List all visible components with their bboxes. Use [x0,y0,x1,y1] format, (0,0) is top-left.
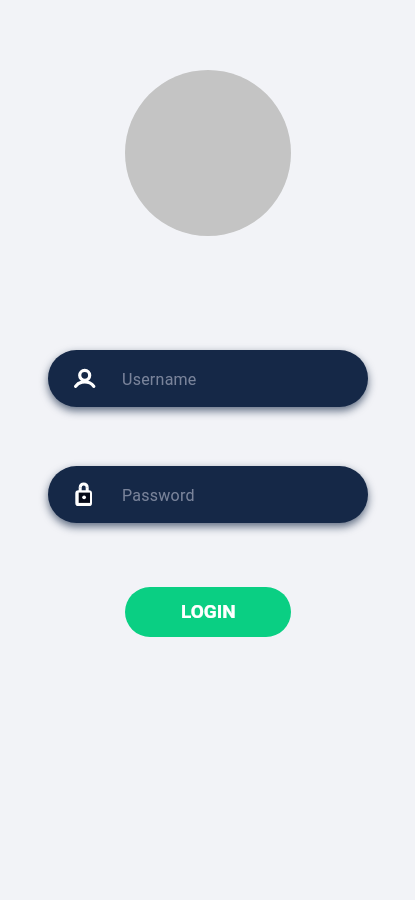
staticText: LOGIN [181,600,236,622]
button[interactable]: LOGIN [125,587,291,637]
button[interactable]: Profile photo [125,70,291,236]
button[interactable]: Password [48,466,368,523]
staticText: Username [122,370,197,389]
button[interactable]: Username [48,350,368,407]
staticText: Password [122,486,195,505]
